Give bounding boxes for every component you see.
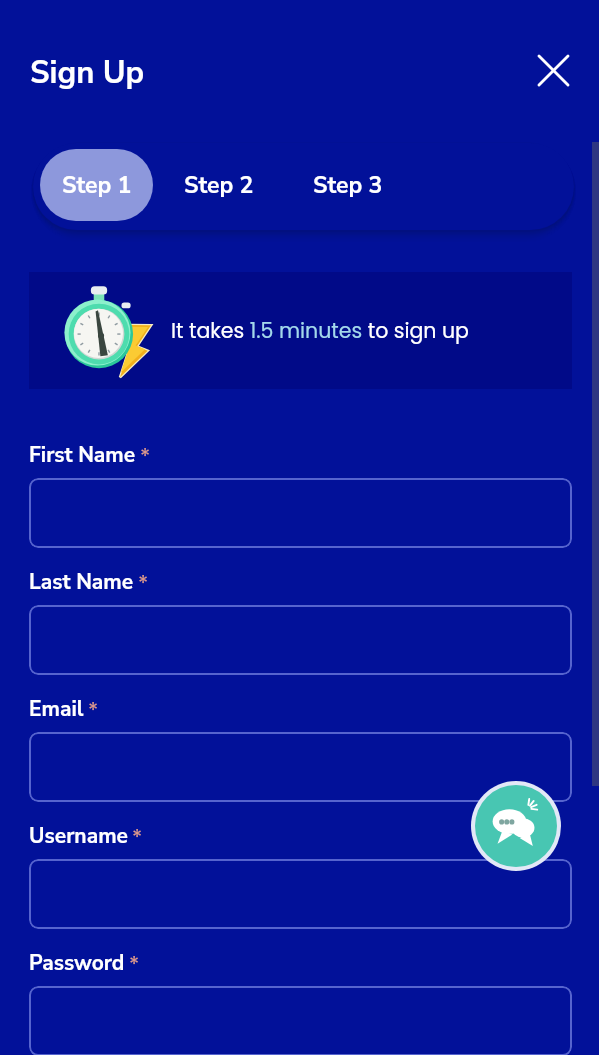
staticText: Step 1 — [62, 170, 132, 201]
staticText: Sign Up — [30, 52, 145, 94]
button[interactable]: Step 3 — [299, 149, 396, 221]
staticText: Email — [29, 695, 84, 724]
staticText: * — [129, 950, 140, 979]
button[interactable]: Chat support — [475, 785, 557, 867]
staticText: * — [138, 569, 149, 598]
button[interactable] — [29, 605, 572, 675]
staticText: Username — [29, 822, 128, 851]
button[interactable] — [29, 986, 572, 1055]
button[interactable] — [29, 478, 572, 548]
button[interactable] — [29, 732, 572, 802]
button[interactable] — [29, 859, 572, 929]
staticText: * — [140, 442, 151, 471]
button[interactable]: Close — [531, 48, 576, 93]
staticText: * — [132, 823, 143, 852]
staticText: Step 2 — [184, 170, 254, 201]
staticText: * — [88, 696, 99, 725]
staticText: Last Name — [29, 568, 134, 597]
button[interactable]: Step 1 — [40, 149, 153, 221]
staticText: Step 3 — [313, 170, 383, 201]
staticText: Password — [29, 949, 125, 978]
staticText: It takes 1.5 minutes to sign up — [171, 316, 469, 345]
button[interactable]: Step 2 — [170, 149, 267, 221]
staticText: First Name — [29, 441, 136, 470]
